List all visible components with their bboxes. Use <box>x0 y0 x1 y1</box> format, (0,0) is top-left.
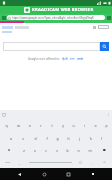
button[interactable]: k <box>85 132 96 144</box>
button[interactable]: a <box>5 132 17 144</box>
staticText: u <box>72 123 75 128</box>
staticText: y <box>62 123 64 128</box>
staticText: v <box>56 148 58 153</box>
staticText: p <box>105 123 108 128</box>
button[interactable]: j <box>74 132 85 144</box>
button[interactable]: Home <box>39 169 49 179</box>
staticText: g <box>56 136 59 141</box>
staticText: o <box>94 123 97 128</box>
button[interactable]: w <box>12 119 24 132</box>
staticText: l <box>101 136 102 141</box>
button[interactable]: s <box>17 132 29 144</box>
button[interactable]: v <box>51 144 62 156</box>
staticText: n <box>77 148 80 153</box>
button[interactable]: Shift <box>0 144 18 156</box>
button[interactable]: Menu <box>106 15 111 20</box>
staticText: a <box>10 136 12 141</box>
staticText: k <box>90 136 92 141</box>
button[interactable]: मराठी <box>77 57 84 61</box>
staticText: t <box>51 123 53 128</box>
button[interactable]: Back <box>14 169 24 179</box>
button[interactable]: b <box>62 144 73 156</box>
staticText: s <box>22 136 24 141</box>
staticText: z <box>23 148 25 153</box>
button[interactable]: हिन्दी <box>62 57 68 61</box>
button[interactable]: Space <box>26 157 74 167</box>
button[interactable]: More options <box>107 113 110 116</box>
button[interactable] <box>98 25 109 29</box>
button[interactable]: y <box>57 119 68 132</box>
button[interactable]: d <box>29 132 41 144</box>
staticText: c <box>45 148 47 153</box>
button[interactable]: https://www.google.co.in/?gws_rd=ssl&gfe… <box>7 15 105 20</box>
button[interactable]: m <box>84 144 95 156</box>
staticText: i <box>84 123 85 128</box>
staticText: ?123 <box>5 161 10 164</box>
staticText: w <box>17 123 20 128</box>
staticText: f <box>46 136 48 141</box>
button[interactable]: ?123 <box>0 156 14 168</box>
button[interactable]: c <box>40 144 51 156</box>
staticText: r <box>40 123 42 128</box>
button[interactable]: ↵ <box>97 156 112 168</box>
staticText: b <box>66 148 69 153</box>
staticText: KRAADICAM WEB BROWSER <box>32 7 94 13</box>
button[interactable]: Menu <box>88 169 98 179</box>
button[interactable]: g <box>52 132 63 144</box>
button[interactable]: p <box>101 119 112 132</box>
button[interactable]: r <box>35 119 46 132</box>
button[interactable]: n <box>73 144 84 156</box>
button[interactable]: u <box>68 119 79 132</box>
staticText: j <box>79 136 80 141</box>
staticText: , <box>19 160 20 165</box>
staticText: d <box>34 136 37 141</box>
button[interactable]: f <box>41 132 52 144</box>
button[interactable]: x <box>29 144 40 156</box>
button[interactable]: Clipboard <box>2 113 6 117</box>
staticText: https://www.google.co.in/?gws_rd=ssl&gfe… <box>12 16 94 20</box>
button[interactable]: Recent apps <box>63 169 73 179</box>
staticText: Google.co.in offered in: <box>28 57 60 61</box>
staticText: x <box>34 148 36 153</box>
button[interactable]: o <box>90 119 101 132</box>
staticText: q <box>5 123 8 128</box>
staticText: . <box>91 160 92 165</box>
button[interactable]: q <box>0 119 12 132</box>
button[interactable]: বাংলা <box>70 58 75 61</box>
button[interactable]: e <box>24 119 35 132</box>
button[interactable] <box>3 42 100 51</box>
button[interactable]: l <box>96 132 107 144</box>
button[interactable]: i <box>79 119 90 132</box>
staticText: h <box>67 136 70 141</box>
staticText: ↵ <box>103 161 106 164</box>
button[interactable]: z <box>18 144 29 156</box>
button[interactable]: h <box>63 132 74 144</box>
button[interactable]: Backspace <box>95 144 112 156</box>
button[interactable]: Search <box>100 42 109 51</box>
button[interactable]: Emoji <box>75 156 86 168</box>
staticText: m <box>88 148 92 153</box>
staticText: e <box>29 123 31 128</box>
button[interactable]: t <box>46 119 57 132</box>
button[interactable]: Back <box>1 15 6 20</box>
button[interactable]: , <box>14 156 25 168</box>
